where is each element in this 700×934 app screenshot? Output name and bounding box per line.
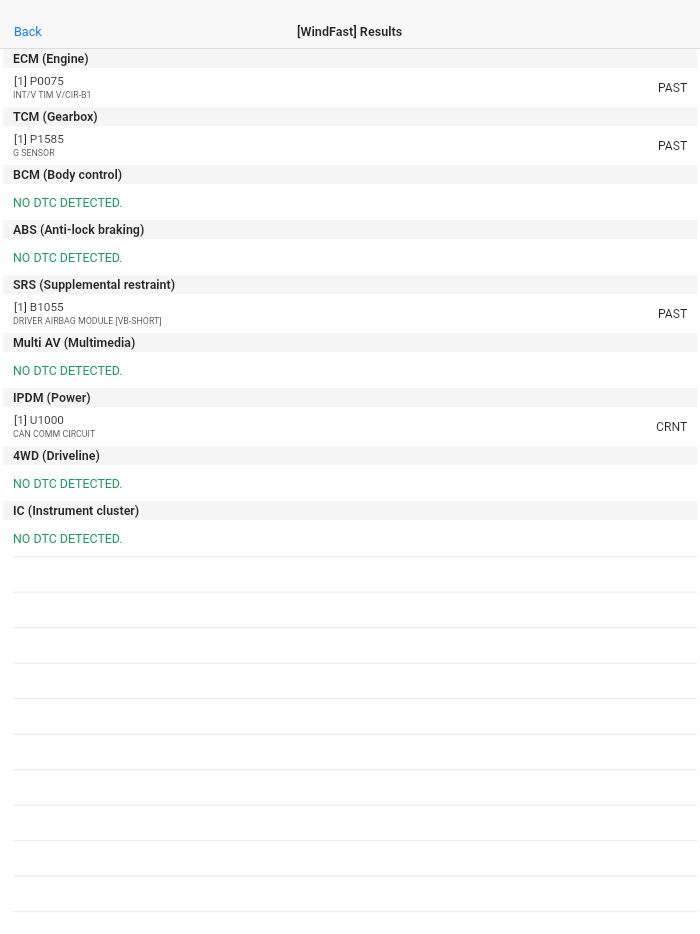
staticText: NO DTC DETECTED. — [13, 363, 123, 378]
staticText: NO DTC DETECTED. — [13, 531, 123, 546]
button[interactable]: Empty row — [0, 556, 700, 592]
button[interactable]: Empty row — [0, 769, 700, 805]
staticText: [1] P1585 — [14, 132, 64, 146]
staticText: IC (Instrument cluster) — [13, 503, 140, 518]
button[interactable]: [1] P1585 — [0, 126, 700, 165]
button[interactable]: NO DTC DETECTED. — [0, 239, 700, 275]
button[interactable]: [1] B1055 — [0, 294, 700, 333]
staticText: NO DTC DETECTED. — [13, 476, 123, 491]
staticText: TCM (Gearbox) — [13, 109, 98, 124]
staticText: INT/V TIM V/CIR-B1 — [13, 90, 92, 100]
staticText: [1] U1000 — [14, 413, 64, 427]
staticText: [1] B1055 — [14, 300, 64, 314]
staticText: PAST — [658, 139, 688, 153]
button[interactable]: Empty row — [0, 734, 700, 770]
staticText: [1] P0075 — [14, 74, 64, 88]
staticText: DRIVER AIRBAG MODULE [VB-SHORT] — [13, 316, 162, 326]
button[interactable]: [1] P0075 — [0, 68, 700, 107]
staticText: PAST — [658, 81, 688, 95]
staticText: NO DTC DETECTED. — [13, 250, 123, 265]
staticText: 4WD (Driveline) — [13, 448, 100, 463]
button[interactable]: Empty row — [0, 627, 700, 663]
staticText: NO DTC DETECTED. — [13, 195, 123, 210]
button[interactable]: Empty row — [0, 911, 700, 934]
staticText: Back — [14, 24, 42, 39]
staticText: IPDM (Power) — [13, 390, 91, 405]
staticText: ABS (Anti-lock braking) — [13, 222, 145, 237]
staticText: G SENSOR — [13, 148, 55, 158]
button[interactable]: NO DTC DETECTED. — [0, 465, 700, 501]
button[interactable]: NO DTC DETECTED. — [0, 352, 700, 388]
staticText: Multi AV (Multimedia) — [13, 335, 136, 350]
staticText: [WindFast] Results — [297, 24, 403, 39]
button[interactable]: Empty row — [0, 876, 700, 912]
staticText: ECM (Engine) — [13, 51, 89, 66]
staticText: CRNT — [656, 420, 688, 434]
button[interactable]: [1] U1000 — [0, 407, 700, 446]
button[interactable]: Empty row — [0, 663, 700, 699]
button[interactable]: Back — [0, 17, 52, 46]
staticText: BCM (Body control) — [13, 167, 123, 182]
staticText: SRS (Supplemental restraint) — [13, 277, 176, 292]
button[interactable]: Empty row — [0, 698, 700, 734]
button[interactable]: Empty row — [0, 805, 700, 841]
button[interactable]: Empty row — [0, 840, 700, 876]
staticText: CAN COMM CIRCUIT — [13, 429, 96, 439]
button[interactable]: NO DTC DETECTED. — [0, 184, 700, 220]
staticText: PAST — [658, 307, 688, 321]
button[interactable]: NO DTC DETECTED. — [0, 520, 700, 556]
button[interactable]: Empty row — [0, 592, 700, 628]
